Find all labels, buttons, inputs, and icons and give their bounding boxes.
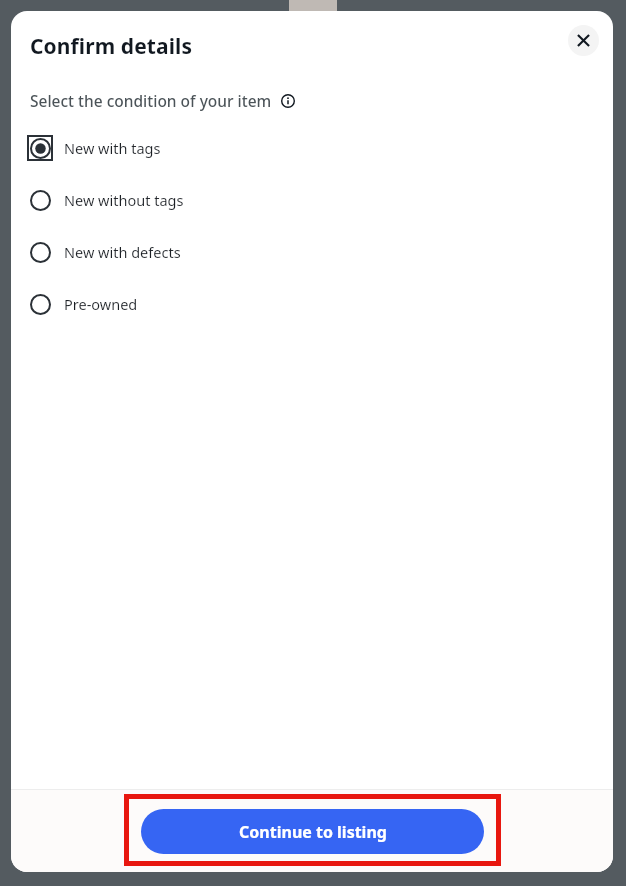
staticText: New without tags	[64, 190, 184, 210]
staticText: Confirm details	[30, 32, 193, 61]
button[interactable]: More information	[279, 92, 297, 110]
button[interactable]: Continue to listing	[141, 809, 484, 854]
staticText: Continue to listing	[239, 821, 387, 843]
staticText: New with defects	[64, 242, 181, 262]
staticText: Select the condition of your item	[30, 90, 272, 111]
staticText: New with tags	[64, 138, 161, 158]
staticText: Pre-owned	[64, 294, 138, 314]
button[interactable]: New with defects	[11, 226, 613, 278]
button[interactable]: Close	[568, 25, 599, 56]
button[interactable]: New without tags	[11, 174, 613, 226]
button[interactable]: Pre-owned	[11, 278, 613, 330]
button[interactable]: New with tags	[11, 122, 613, 174]
